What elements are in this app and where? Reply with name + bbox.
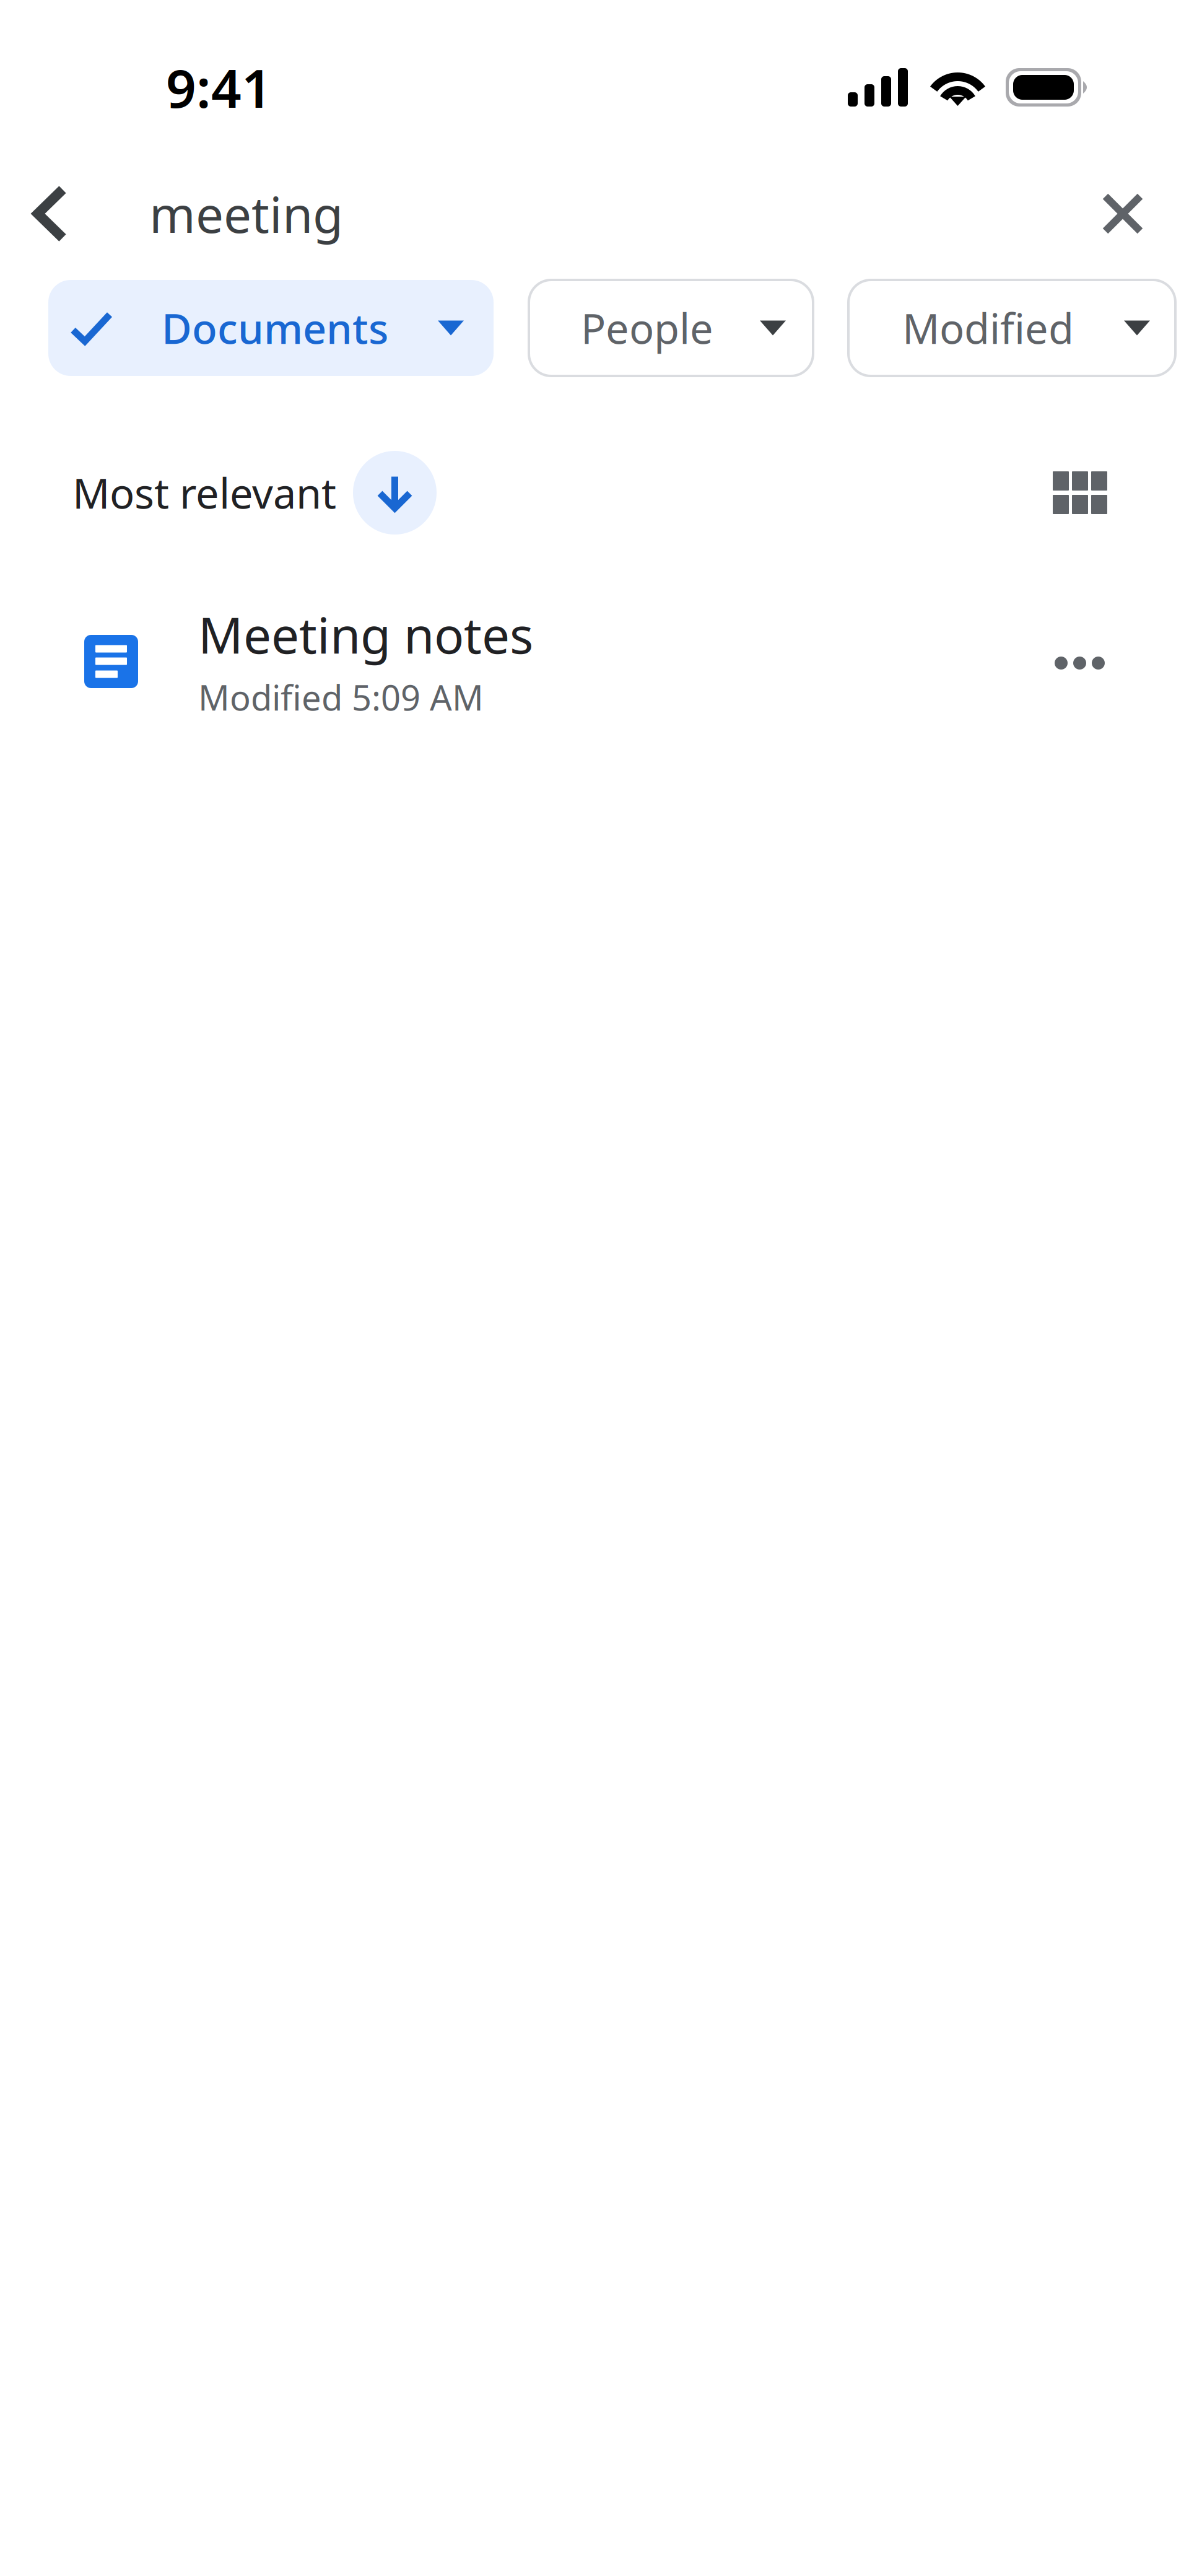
- button[interactable]: Clear search: [1074, 170, 1189, 257]
- staticText: 9:41: [166, 52, 272, 122]
- staticText: Modified 5:09 AM: [198, 674, 484, 720]
- staticText: Modified: [902, 301, 1074, 355]
- button[interactable]: Meeting notes: [0, 550, 1189, 705]
- button[interactable]: Documents: [48, 280, 494, 376]
- staticText: Most relevant: [72, 465, 336, 520]
- button[interactable]: People: [529, 280, 813, 376]
- button[interactable]: meeting: [107, 170, 1074, 257]
- button[interactable]: Back: [0, 170, 107, 257]
- staticText: People: [581, 301, 713, 355]
- staticText: meeting: [149, 181, 343, 247]
- staticText: Documents: [162, 301, 388, 355]
- staticText: Meeting notes: [198, 602, 533, 667]
- button[interactable]: Most relevant: [72, 451, 437, 535]
- button[interactable]: Grid view: [1039, 451, 1121, 535]
- button[interactable]: Modified: [848, 280, 1175, 376]
